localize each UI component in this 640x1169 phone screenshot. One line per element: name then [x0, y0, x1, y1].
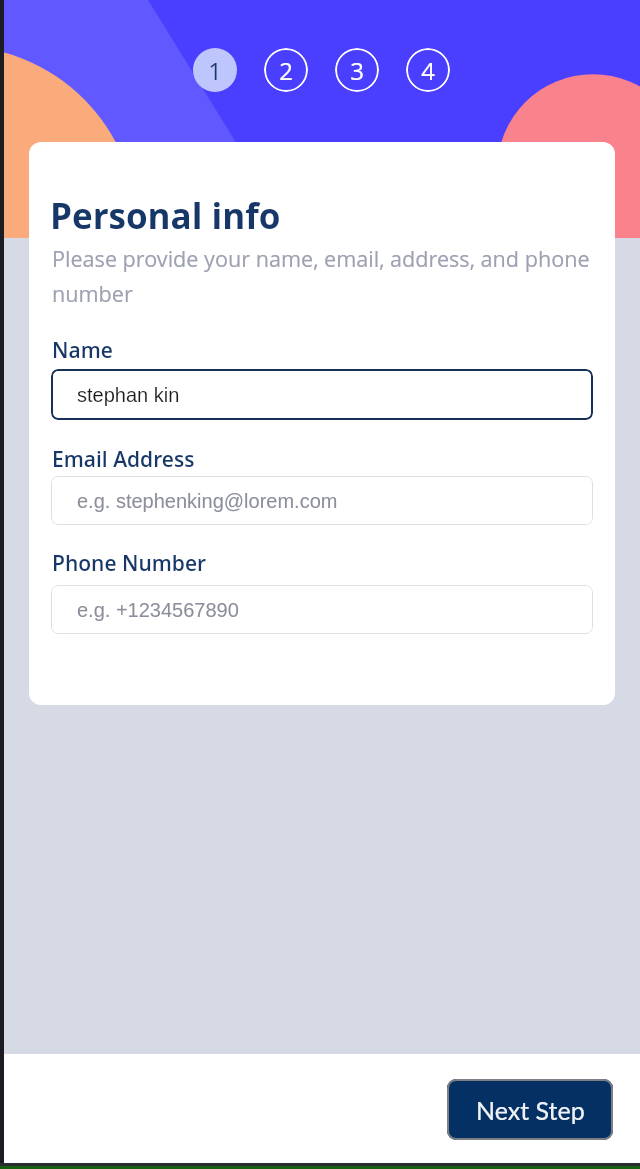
button[interactable]: Step 3	[335, 48, 379, 92]
button[interactable]: Next Step	[447, 1079, 613, 1140]
staticText: stephan kin	[77, 384, 180, 406]
staticText: 3	[350, 54, 364, 87]
staticText: Name	[52, 336, 113, 365]
staticText: 1	[208, 54, 222, 87]
staticText: 2	[279, 54, 293, 87]
button[interactable]: Step 1	[193, 48, 237, 92]
button[interactable]: e.g. stephenking@lorem.com	[51, 476, 593, 525]
button[interactable]: Step 2	[264, 48, 308, 92]
staticText: Next Step	[476, 1095, 585, 1125]
staticText: 4	[421, 54, 435, 87]
staticText: e.g. stephenking@lorem.com	[77, 490, 338, 512]
button[interactable]: stephan kin	[51, 369, 593, 420]
staticText: e.g. +1234567890	[77, 599, 239, 621]
button[interactable]: e.g. +1234567890	[51, 585, 593, 634]
button[interactable]: Step 4	[406, 48, 450, 92]
staticText: Email Address	[52, 445, 195, 474]
staticText: Personal info	[50, 192, 281, 240]
staticText: Please provide your name, email, address…	[52, 244, 604, 309]
staticText: Phone Number	[52, 549, 207, 578]
